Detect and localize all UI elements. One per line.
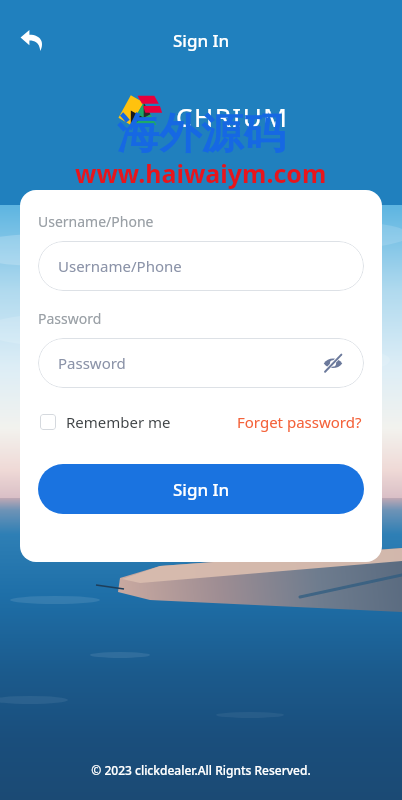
staticText: 海外源码 (117, 108, 285, 161)
staticText: Password (38, 309, 102, 328)
button[interactable]: Sign In (38, 464, 364, 514)
button[interactable]: Password (38, 338, 364, 388)
staticText: Sign In (173, 478, 230, 501)
staticText: Sign In (173, 29, 230, 52)
staticText: Forget password? (237, 412, 362, 432)
staticText: Username/Phone (58, 256, 182, 276)
button[interactable]: Remember me (38, 408, 173, 436)
button[interactable]: Show password (318, 348, 348, 378)
button[interactable]: Forget password? (235, 408, 364, 436)
button[interactable]: Username/Phone (38, 241, 364, 291)
staticText: www.haiwaiym.com (75, 156, 327, 190)
staticText: CHRIUM (176, 99, 289, 134)
staticText: Password (58, 353, 126, 373)
button[interactable]: Back (8, 16, 56, 64)
staticText: © 2023 clickdealer.All Rignts Reserved. (0, 762, 402, 778)
staticText: Username/Phone (38, 212, 154, 231)
staticText: Remember me (66, 412, 171, 432)
